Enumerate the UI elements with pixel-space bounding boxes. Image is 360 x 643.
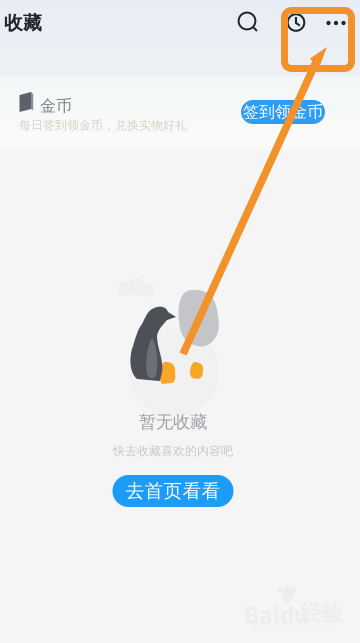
staticText: 每日签到领金币，兑换实物好礼: [19, 118, 187, 133]
staticText: Baidu: [244, 600, 309, 630]
button[interactable]: More options: [324, 11, 348, 35]
staticText: 签到领金币: [243, 102, 323, 122]
staticText: 经验: [300, 600, 342, 626]
button[interactable]: History: [285, 11, 309, 35]
staticText: 暂无收藏: [139, 411, 207, 433]
button[interactable]: 去首页看看: [112, 475, 233, 507]
button[interactable]: 收藏: [4, 0, 56, 46]
staticText: 金币: [40, 96, 72, 116]
staticText: 去首页看看: [125, 479, 220, 502]
button[interactable]: Search: [237, 11, 261, 35]
staticText: 收藏: [4, 11, 42, 34]
button[interactable]: 签到领金币: [241, 100, 325, 124]
staticText: 快去收藏喜欢的内容吧: [113, 444, 233, 458]
